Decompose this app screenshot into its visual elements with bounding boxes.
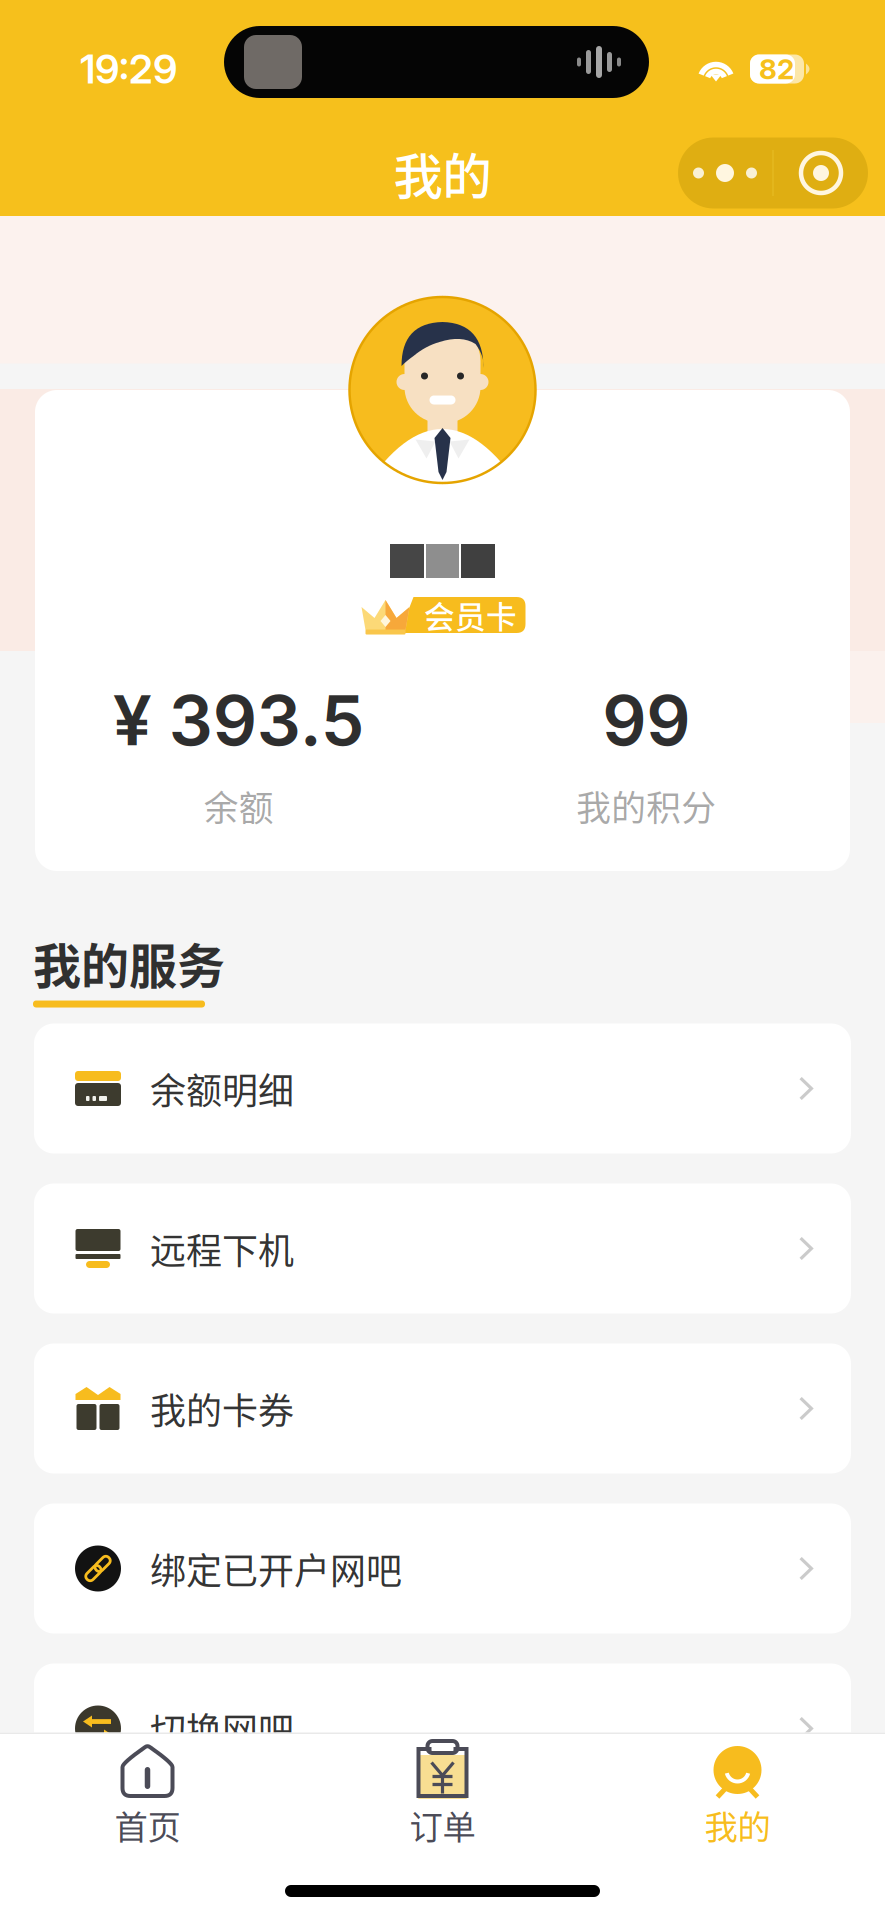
staticText: 远程下机 — [150, 1222, 294, 1274]
button[interactable]: 远程下机 — [34, 1183, 851, 1313]
staticText: 余额明细 — [150, 1062, 294, 1114]
button[interactable]: 我的 — [590, 1743, 885, 1844]
staticText: 我的 — [704, 1801, 770, 1849]
staticText: 绑定已开户网吧 — [150, 1542, 402, 1594]
staticText: 我的 — [393, 137, 491, 209]
button[interactable]: 订单 — [295, 1743, 590, 1844]
button[interactable]: 切换网吧 — [34, 1663, 851, 1793]
staticText: 余额 — [204, 781, 274, 831]
button[interactable]: 余额明细 — [34, 1023, 851, 1153]
staticText: 切换网吧 — [150, 1702, 294, 1754]
staticText: 我的卡券 — [150, 1382, 294, 1434]
staticText: ¥ 393.5 — [113, 678, 365, 762]
staticText: 我的积分 — [576, 781, 716, 831]
staticText: 我的服务 — [33, 928, 225, 997]
staticText: 99 — [602, 678, 690, 762]
staticText: 首页 — [114, 1801, 180, 1849]
button[interactable]: Mini program menu — [678, 137, 868, 208]
staticText: 82 — [759, 52, 794, 86]
button[interactable]: 绑定已开户网吧 — [34, 1503, 851, 1633]
button[interactable]: 首页 — [0, 1743, 295, 1844]
staticText: 订单 — [409, 1801, 475, 1849]
button[interactable]: 我的卡券 — [34, 1343, 851, 1473]
staticText: 19:29 — [80, 45, 177, 93]
staticText: 会员卡 — [424, 593, 517, 637]
